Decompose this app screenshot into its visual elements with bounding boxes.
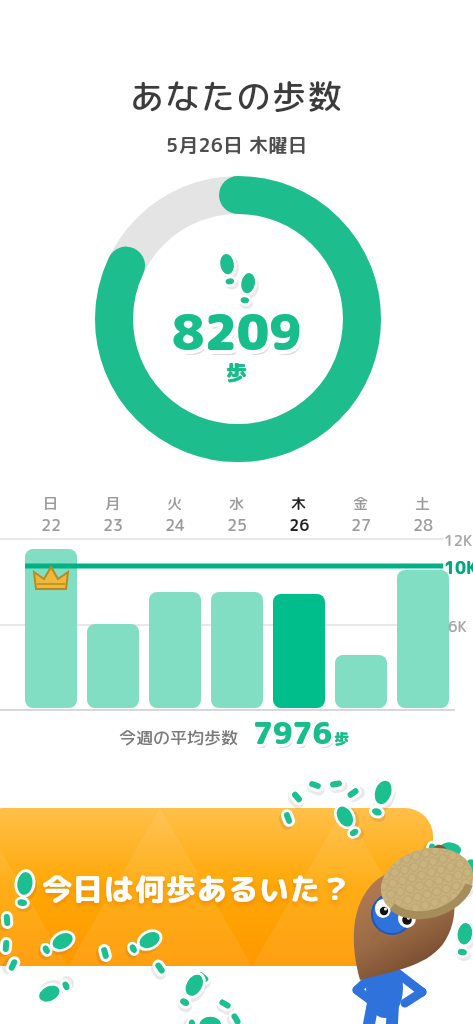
staticText: 8209: [168, 297, 298, 365]
staticText: 8209: [172, 301, 302, 369]
staticText: 今週の平均歩数: [119, 726, 238, 750]
staticText: 歩: [333, 727, 349, 748]
staticText: 歩: [334, 730, 350, 751]
staticText: 歩: [224, 359, 245, 388]
staticText: 歩: [226, 360, 247, 389]
staticText: 歩: [228, 355, 249, 384]
staticText: 23: [103, 514, 124, 536]
staticText: 歩: [334, 726, 350, 747]
staticText: 火: [167, 493, 183, 514]
staticText: 25: [227, 514, 248, 536]
staticText: 歩: [224, 357, 245, 386]
staticText: 歩: [228, 359, 249, 388]
staticText: 8209: [176, 297, 306, 365]
staticText: 6K: [448, 616, 467, 637]
staticText: 歩: [224, 355, 245, 384]
staticText: あなたの歩数: [130, 72, 343, 119]
staticText: 歩: [226, 355, 247, 384]
staticText: 28: [413, 514, 434, 536]
staticText: 5月26日 木曜日: [166, 132, 308, 159]
staticText: 水: [229, 493, 245, 514]
staticText: 27: [351, 514, 372, 536]
staticText: 7976: [255, 716, 335, 758]
staticText: 歩: [333, 729, 349, 750]
staticText: 歩: [336, 728, 352, 749]
staticText: 7976: [250, 712, 330, 754]
staticText: 8209: [172, 293, 302, 361]
staticText: 土: [415, 493, 431, 514]
staticText: 7976: [255, 710, 335, 752]
staticText: 歩: [229, 357, 250, 386]
staticText: 7976: [253, 715, 333, 757]
staticText: 24: [165, 514, 186, 536]
staticText: 8209: [175, 294, 305, 362]
staticText: 7976: [255, 714, 335, 756]
staticText: 22: [41, 514, 62, 536]
staticText: 7976: [251, 714, 331, 756]
staticText: 12K: [444, 530, 472, 551]
staticText: 8209: [175, 300, 305, 368]
staticText: 月: [105, 493, 121, 514]
staticText: 8209: [169, 294, 299, 362]
staticText: 木: [291, 493, 307, 514]
staticText: 日: [43, 493, 59, 514]
staticText: 7976: [256, 712, 336, 754]
staticText: 金: [353, 493, 369, 514]
staticText: 7976: [253, 709, 333, 751]
button[interactable]: 今日は何歩あるいた？: [0, 808, 433, 966]
staticText: 今日は何歩あるいた？: [42, 868, 352, 910]
staticText: 10K: [444, 556, 473, 580]
staticText: 7976: [251, 710, 331, 752]
staticText: 8209: [172, 297, 302, 365]
staticText: 歩: [335, 727, 351, 748]
staticText: 8209: [169, 300, 299, 368]
staticText: 8209: [175, 302, 305, 370]
staticText: 歩: [332, 728, 348, 749]
staticText: 歩: [334, 728, 350, 749]
staticText: 歩: [226, 357, 247, 386]
staticText: 7976: [253, 712, 333, 754]
staticText: 26: [289, 514, 310, 536]
staticText: 歩: [335, 729, 351, 750]
